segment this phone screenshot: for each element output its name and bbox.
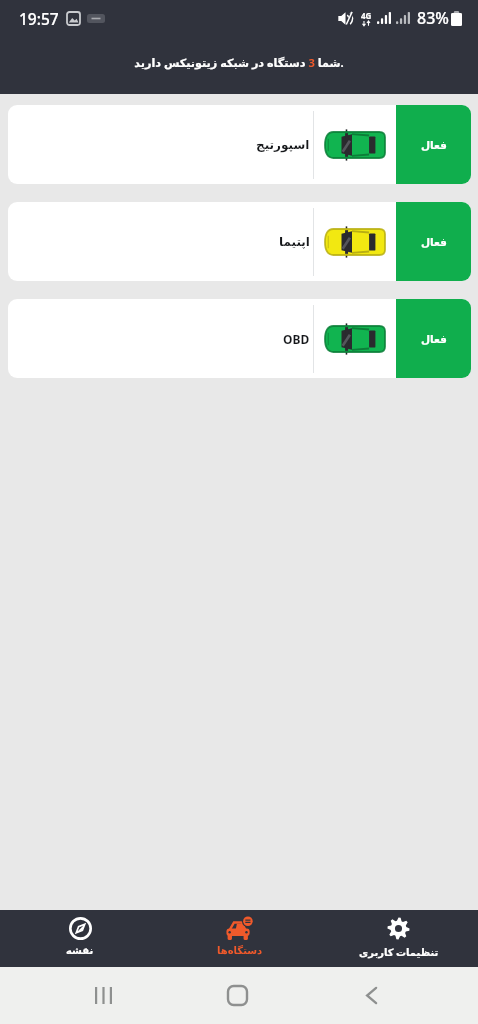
button[interactable]: Back [304, 967, 438, 1024]
button[interactable]: اپتیما [8, 202, 471, 281]
staticText: اسپورتیج [256, 138, 310, 152]
other: Recents [95, 987, 112, 1004]
other: Map [69, 917, 92, 940]
staticText: 4G [361, 10, 372, 21]
button[interactable]: OBD [8, 299, 471, 378]
button[interactable]: Home [170, 967, 304, 1024]
button[interactable]: Recents [36, 967, 170, 1024]
button[interactable]: Map [0, 910, 160, 967]
staticText: تنظیمات کاربری [359, 945, 439, 959]
staticText: OBD [283, 331, 310, 347]
other: Devices [225, 916, 254, 941]
staticText: دستگاه‌ها [217, 945, 263, 957]
staticText: اپتیما [279, 235, 310, 249]
staticText: فعال [421, 333, 447, 345]
other: Home [228, 986, 247, 1005]
staticText: 83% [417, 7, 449, 29]
button[interactable]: اسپورتیج [8, 105, 471, 184]
staticText: فعال [421, 236, 447, 248]
staticText: 19:57 [19, 8, 59, 29]
staticText: نقشه [66, 945, 94, 957]
staticText: فعال [421, 139, 447, 151]
button[interactable]: Devices [160, 910, 319, 967]
staticText: شما 3 دستگاه در شبکه زیتونیکس دارید. [134, 55, 344, 70]
other: Settings [387, 917, 410, 940]
other: Back [366, 987, 377, 1004]
button[interactable]: Settings [319, 910, 478, 967]
